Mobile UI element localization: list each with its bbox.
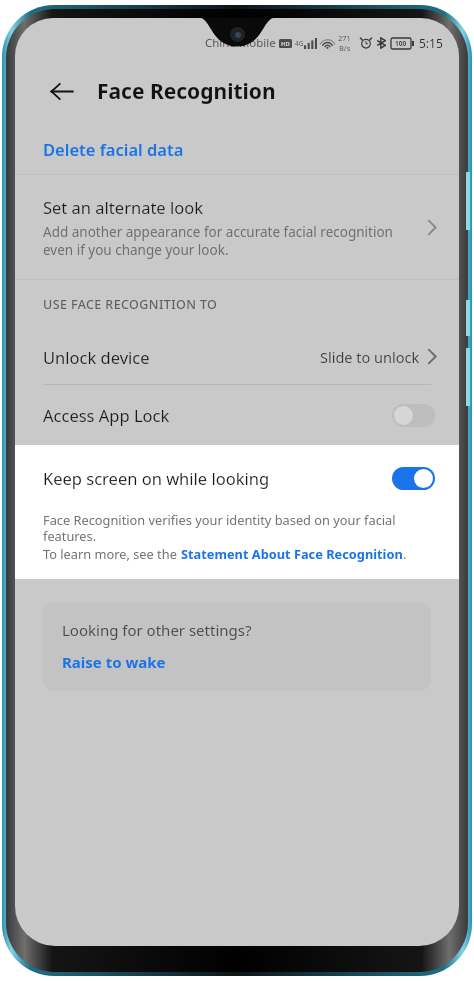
staticText: 4G	[295, 39, 304, 48]
staticText: 271	[338, 33, 351, 43]
staticText: Unlock device	[43, 346, 150, 368]
button[interactable]: Access App Lock	[15, 385, 459, 445]
staticText: 5:15	[419, 35, 443, 51]
button[interactable]: Keep screen on while looking	[15, 445, 459, 511]
staticText: Looking for other settings?	[62, 620, 252, 640]
button[interactable]: Unlock device	[15, 329, 459, 384]
staticText: Set an alternate look	[43, 196, 203, 218]
button[interactable]: Statement About Face Recognition	[181, 545, 403, 562]
button[interactable]: Raise to wake	[62, 652, 166, 672]
staticText: B/s	[339, 43, 351, 53]
button[interactable]: Back	[41, 71, 81, 111]
staticText: Keep screen on while looking	[43, 467, 270, 489]
staticText: Delete facial data	[43, 138, 184, 160]
staticText: .	[403, 545, 407, 562]
button[interactable]: Delete facial data	[15, 124, 459, 174]
button[interactable]: Set an alternate look	[15, 175, 459, 279]
staticText: To learn more, see the	[43, 545, 181, 562]
button[interactable]: Toggle off	[392, 404, 435, 427]
staticText: China Mobile	[205, 35, 276, 51]
staticText: Face Recognition verifies your identity …	[43, 511, 435, 545]
staticText: Add another appearance for accurate faci…	[43, 223, 417, 259]
button[interactable]: Toggle on	[392, 467, 435, 490]
staticText: Raise to wake	[62, 652, 166, 672]
staticText: 100	[395, 39, 407, 48]
staticText: USE FACE RECOGNITION TO	[43, 296, 218, 313]
staticText: HD	[281, 40, 290, 48]
staticText: Slide to unlock	[320, 347, 420, 367]
staticText: Access App Lock	[43, 404, 170, 426]
staticText: Face Recognition	[97, 77, 276, 106]
